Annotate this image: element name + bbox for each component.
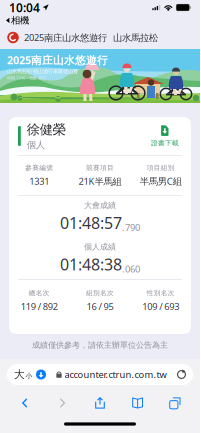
staticText: 成績僅供參考，請依主辦單位公告為主 xyxy=(32,340,168,350)
button[interactable]: Downloads xyxy=(35,369,46,380)
staticText: 大會成績 xyxy=(84,200,116,210)
staticText: 參賽編號 xyxy=(25,164,53,172)
staticText: 組別名次 xyxy=(86,289,114,297)
button[interactable]: Reload xyxy=(176,369,193,380)
staticText: 10:04 xyxy=(9,0,40,15)
staticText: 性別名次 xyxy=(147,289,175,297)
button[interactable]: Share xyxy=(81,397,119,409)
staticText: 01:48:57 xyxy=(60,212,122,233)
staticText: 項目組別 xyxy=(147,164,175,172)
button[interactable]: Forward xyxy=(44,398,81,408)
button[interactable]: Tabs xyxy=(156,397,194,409)
staticText: 時間 11/16 ─ 地點 南庄 xyxy=(7,75,46,80)
staticText: 小 xyxy=(25,372,32,380)
staticText: accounter.ctrun.com.tw xyxy=(64,368,166,381)
button[interactable]: 相機 xyxy=(6,15,29,26)
staticText: 21K半馬組 xyxy=(78,175,121,187)
staticText: 競賽項目 xyxy=(86,164,114,172)
staticText: 1331 xyxy=(29,175,49,187)
staticText: 山水馬拉松·桃山遊行車隊登山賽 xyxy=(7,68,78,75)
staticText: 相機 xyxy=(11,15,29,26)
staticText: 證書下載 xyxy=(151,139,179,147)
staticText: .790 xyxy=(122,221,140,233)
staticText: 109 / 693 xyxy=(142,300,179,313)
staticText: 大 xyxy=(14,368,25,381)
staticText: 2025南庄山水悠遊行 山水馬拉松 xyxy=(24,31,158,44)
staticText: .060 xyxy=(122,263,140,275)
staticText: 半馬男C組 xyxy=(140,175,182,187)
staticText: 01:48:38 xyxy=(60,254,122,275)
staticText: 徐健榮 xyxy=(27,121,66,138)
staticText: 2025南庄山水悠遊行 xyxy=(7,53,108,67)
button[interactable]: Bookmarks xyxy=(119,397,156,409)
button[interactable]: 證書下載 xyxy=(142,122,188,150)
staticText: 個人成績 xyxy=(84,242,116,252)
staticText: 119 / 892 xyxy=(21,300,58,313)
button[interactable]: Back xyxy=(6,398,44,408)
staticText: 總名次 xyxy=(29,289,50,297)
staticText: 個人 xyxy=(27,139,45,151)
staticText: 16 / 95 xyxy=(86,300,113,313)
button[interactable]: 大 xyxy=(7,368,35,381)
